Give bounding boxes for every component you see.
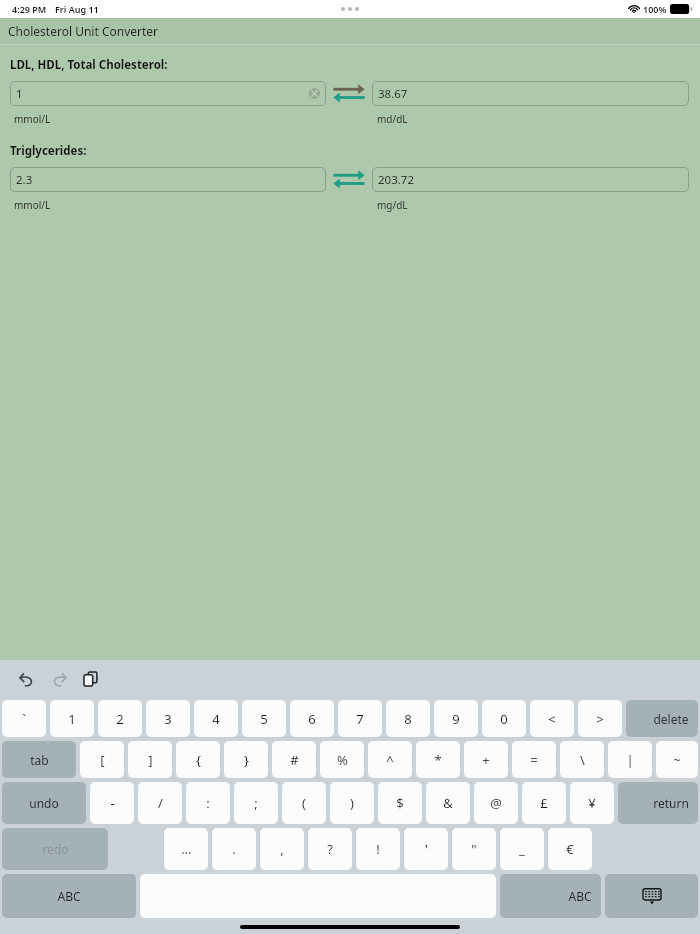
staticText: 7 bbox=[356, 710, 364, 728]
button[interactable]: ~ bbox=[656, 741, 698, 778]
staticText: " bbox=[471, 840, 477, 858]
button[interactable]: 1 bbox=[50, 700, 94, 737]
button[interactable]: 2 bbox=[98, 700, 142, 737]
staticText: ABC bbox=[568, 888, 592, 904]
button[interactable]: / bbox=[138, 782, 182, 824]
button[interactable]: ¥ bbox=[570, 782, 614, 824]
button[interactable]: £ bbox=[522, 782, 566, 824]
button[interactable]: ] bbox=[128, 741, 172, 778]
staticText: £ bbox=[540, 794, 548, 812]
button[interactable]: * bbox=[416, 741, 460, 778]
button[interactable]: % bbox=[320, 741, 364, 778]
staticText: ] bbox=[148, 751, 153, 769]
button[interactable]: . bbox=[212, 828, 256, 870]
staticText: ~ bbox=[673, 751, 681, 769]
button[interactable]: 5 bbox=[242, 700, 286, 737]
button[interactable]: tab bbox=[2, 741, 76, 778]
button[interactable]: ' bbox=[404, 828, 448, 870]
staticText: * bbox=[434, 751, 442, 769]
staticText: 38.67 bbox=[378, 86, 408, 102]
staticText: redo bbox=[42, 841, 69, 857]
staticText: 100% bbox=[643, 3, 667, 15]
staticText: # bbox=[290, 751, 299, 769]
button[interactable]: 7 bbox=[338, 700, 382, 737]
button[interactable]: & bbox=[426, 782, 470, 824]
staticText: mg/dL bbox=[377, 198, 408, 212]
button[interactable]: { bbox=[176, 741, 220, 778]
button[interactable]: … bbox=[164, 828, 208, 870]
button[interactable]: return bbox=[618, 782, 698, 824]
button[interactable]: ABC bbox=[2, 874, 136, 918]
staticText: { bbox=[196, 751, 201, 769]
staticText: Fri Aug 11 bbox=[55, 3, 99, 15]
staticText: 5 bbox=[260, 710, 268, 728]
staticText: 3 bbox=[164, 710, 172, 728]
staticText: ^ bbox=[386, 751, 394, 769]
button[interactable]: \ bbox=[560, 741, 604, 778]
button[interactable]: ; bbox=[234, 782, 278, 824]
staticText: _ bbox=[519, 840, 525, 858]
button[interactable]: 2.3 bbox=[10, 167, 326, 192]
button[interactable]: 1 bbox=[10, 81, 326, 106]
button[interactable]: | bbox=[608, 741, 652, 778]
button[interactable]: € bbox=[548, 828, 592, 870]
button[interactable]: 38.67 bbox=[372, 81, 689, 106]
button[interactable]: > bbox=[578, 700, 622, 737]
staticText: ` bbox=[22, 710, 26, 728]
button[interactable]: ) bbox=[330, 782, 374, 824]
button[interactable]: ! bbox=[356, 828, 400, 870]
button[interactable]: 6 bbox=[290, 700, 334, 737]
staticText: tab bbox=[30, 752, 49, 768]
staticText: - bbox=[110, 794, 115, 812]
button[interactable]: + bbox=[464, 741, 508, 778]
button[interactable]: 203.72 bbox=[372, 167, 689, 192]
button[interactable]: 0 bbox=[482, 700, 526, 737]
button[interactable]: # bbox=[272, 741, 316, 778]
staticText: [ bbox=[100, 751, 105, 769]
button[interactable]: ` bbox=[2, 700, 46, 737]
staticText: > bbox=[596, 710, 604, 728]
button[interactable]: - bbox=[90, 782, 134, 824]
button[interactable]: ^ bbox=[368, 741, 412, 778]
button[interactable]: = bbox=[512, 741, 556, 778]
button[interactable]: undo bbox=[2, 782, 86, 824]
staticText: @ bbox=[490, 794, 502, 812]
button[interactable]: " bbox=[452, 828, 496, 870]
button[interactable]: $ bbox=[378, 782, 422, 824]
button[interactable]: _ bbox=[500, 828, 544, 870]
button[interactable]: delete bbox=[626, 700, 698, 737]
button[interactable]: 4 bbox=[194, 700, 238, 737]
staticText: % bbox=[337, 751, 348, 769]
staticText: undo bbox=[29, 795, 59, 811]
staticText: ABC bbox=[57, 888, 81, 904]
staticText: : bbox=[206, 794, 210, 812]
button[interactable]: ? bbox=[308, 828, 352, 870]
button[interactable]: } bbox=[224, 741, 268, 778]
button[interactable]: redo bbox=[2, 828, 108, 870]
staticText: ' bbox=[425, 840, 428, 858]
button[interactable]: 8 bbox=[386, 700, 430, 737]
button[interactable]: 9 bbox=[434, 700, 478, 737]
staticText: 203.72 bbox=[378, 172, 414, 188]
button[interactable]: Redo bbox=[46, 666, 72, 692]
button[interactable]: 3 bbox=[146, 700, 190, 737]
button[interactable]: ABC bbox=[500, 874, 601, 918]
button[interactable]: < bbox=[530, 700, 574, 737]
staticText: Triglycerides: bbox=[10, 143, 87, 159]
staticText: ! bbox=[376, 840, 380, 858]
staticText: 6 bbox=[308, 710, 316, 728]
button[interactable]: Swap conversion direction bbox=[330, 167, 368, 192]
button[interactable]: , bbox=[260, 828, 304, 870]
button[interactable]: @ bbox=[474, 782, 518, 824]
button[interactable]: Undo bbox=[14, 666, 40, 692]
button[interactable]: Clear text bbox=[309, 88, 320, 99]
button[interactable]: Swap conversion direction bbox=[330, 81, 368, 106]
button[interactable]: ( bbox=[282, 782, 326, 824]
button[interactable]: [ bbox=[80, 741, 124, 778]
button[interactable]: Dismiss keyboard bbox=[605, 874, 698, 918]
staticText: | bbox=[626, 751, 634, 769]
staticText: \ bbox=[580, 751, 585, 769]
button[interactable]: : bbox=[186, 782, 230, 824]
button[interactable]: Paste bbox=[78, 666, 104, 692]
